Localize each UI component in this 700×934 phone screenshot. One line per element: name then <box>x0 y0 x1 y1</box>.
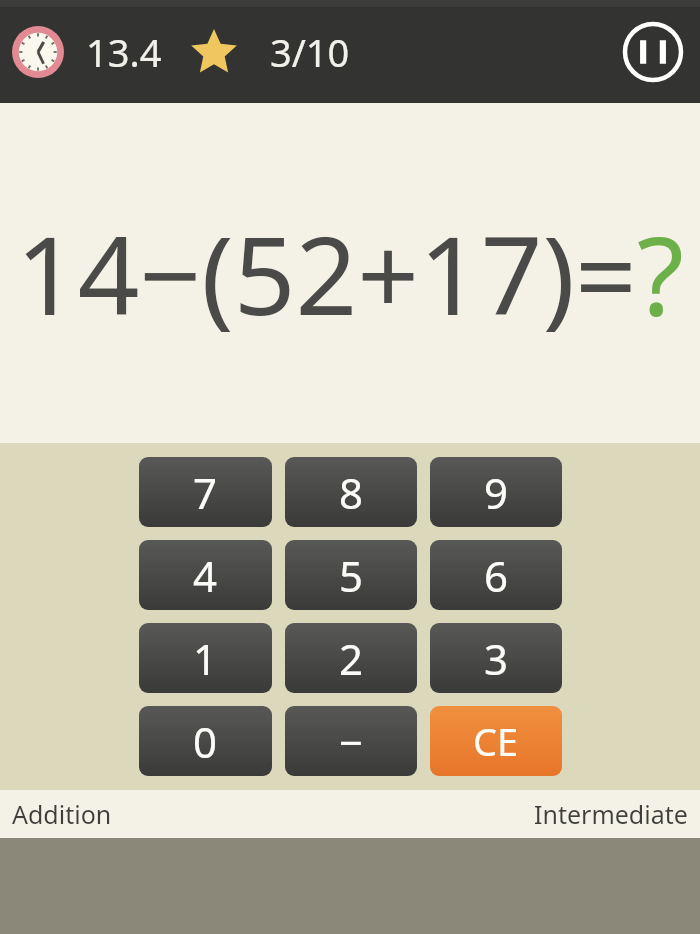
staticText: 3/10 <box>270 26 350 78</box>
button[interactable]: 7 <box>139 457 272 527</box>
staticText: 13.4 <box>86 26 162 78</box>
button[interactable]: 9 <box>430 457 562 527</box>
button[interactable]: CE <box>430 706 562 776</box>
button[interactable]: 0 <box>139 706 272 776</box>
button[interactable]: Pause <box>622 21 684 83</box>
staticText: 5 <box>339 547 364 604</box>
button[interactable]: 8 <box>285 457 417 527</box>
staticText: 7 <box>193 464 218 521</box>
staticText: Addition <box>12 797 112 831</box>
staticText: ? <box>637 200 684 347</box>
staticText: 9 <box>484 464 509 521</box>
staticText: 14−(52+17)= <box>16 200 637 347</box>
button[interactable]: 4 <box>139 540 272 610</box>
other: Score <box>190 28 238 76</box>
staticText: 8 <box>339 464 364 521</box>
button[interactable]: 6 <box>430 540 562 610</box>
staticText: 0 <box>193 713 218 770</box>
button[interactable]: − <box>285 706 417 776</box>
button[interactable]: 3 <box>430 623 562 693</box>
button[interactable]: 1 <box>139 623 272 693</box>
button[interactable]: 2 <box>285 623 417 693</box>
other: Timer <box>12 26 64 78</box>
staticText: 6 <box>484 547 509 604</box>
staticText: CE <box>473 715 519 767</box>
staticText: 2 <box>339 630 364 687</box>
staticText: 1 <box>193 630 218 687</box>
button[interactable]: 5 <box>285 540 417 610</box>
staticText: 3 <box>484 630 509 687</box>
staticText: Intermediate <box>534 797 688 831</box>
staticText: 4 <box>193 547 218 604</box>
staticText: − <box>339 713 364 770</box>
